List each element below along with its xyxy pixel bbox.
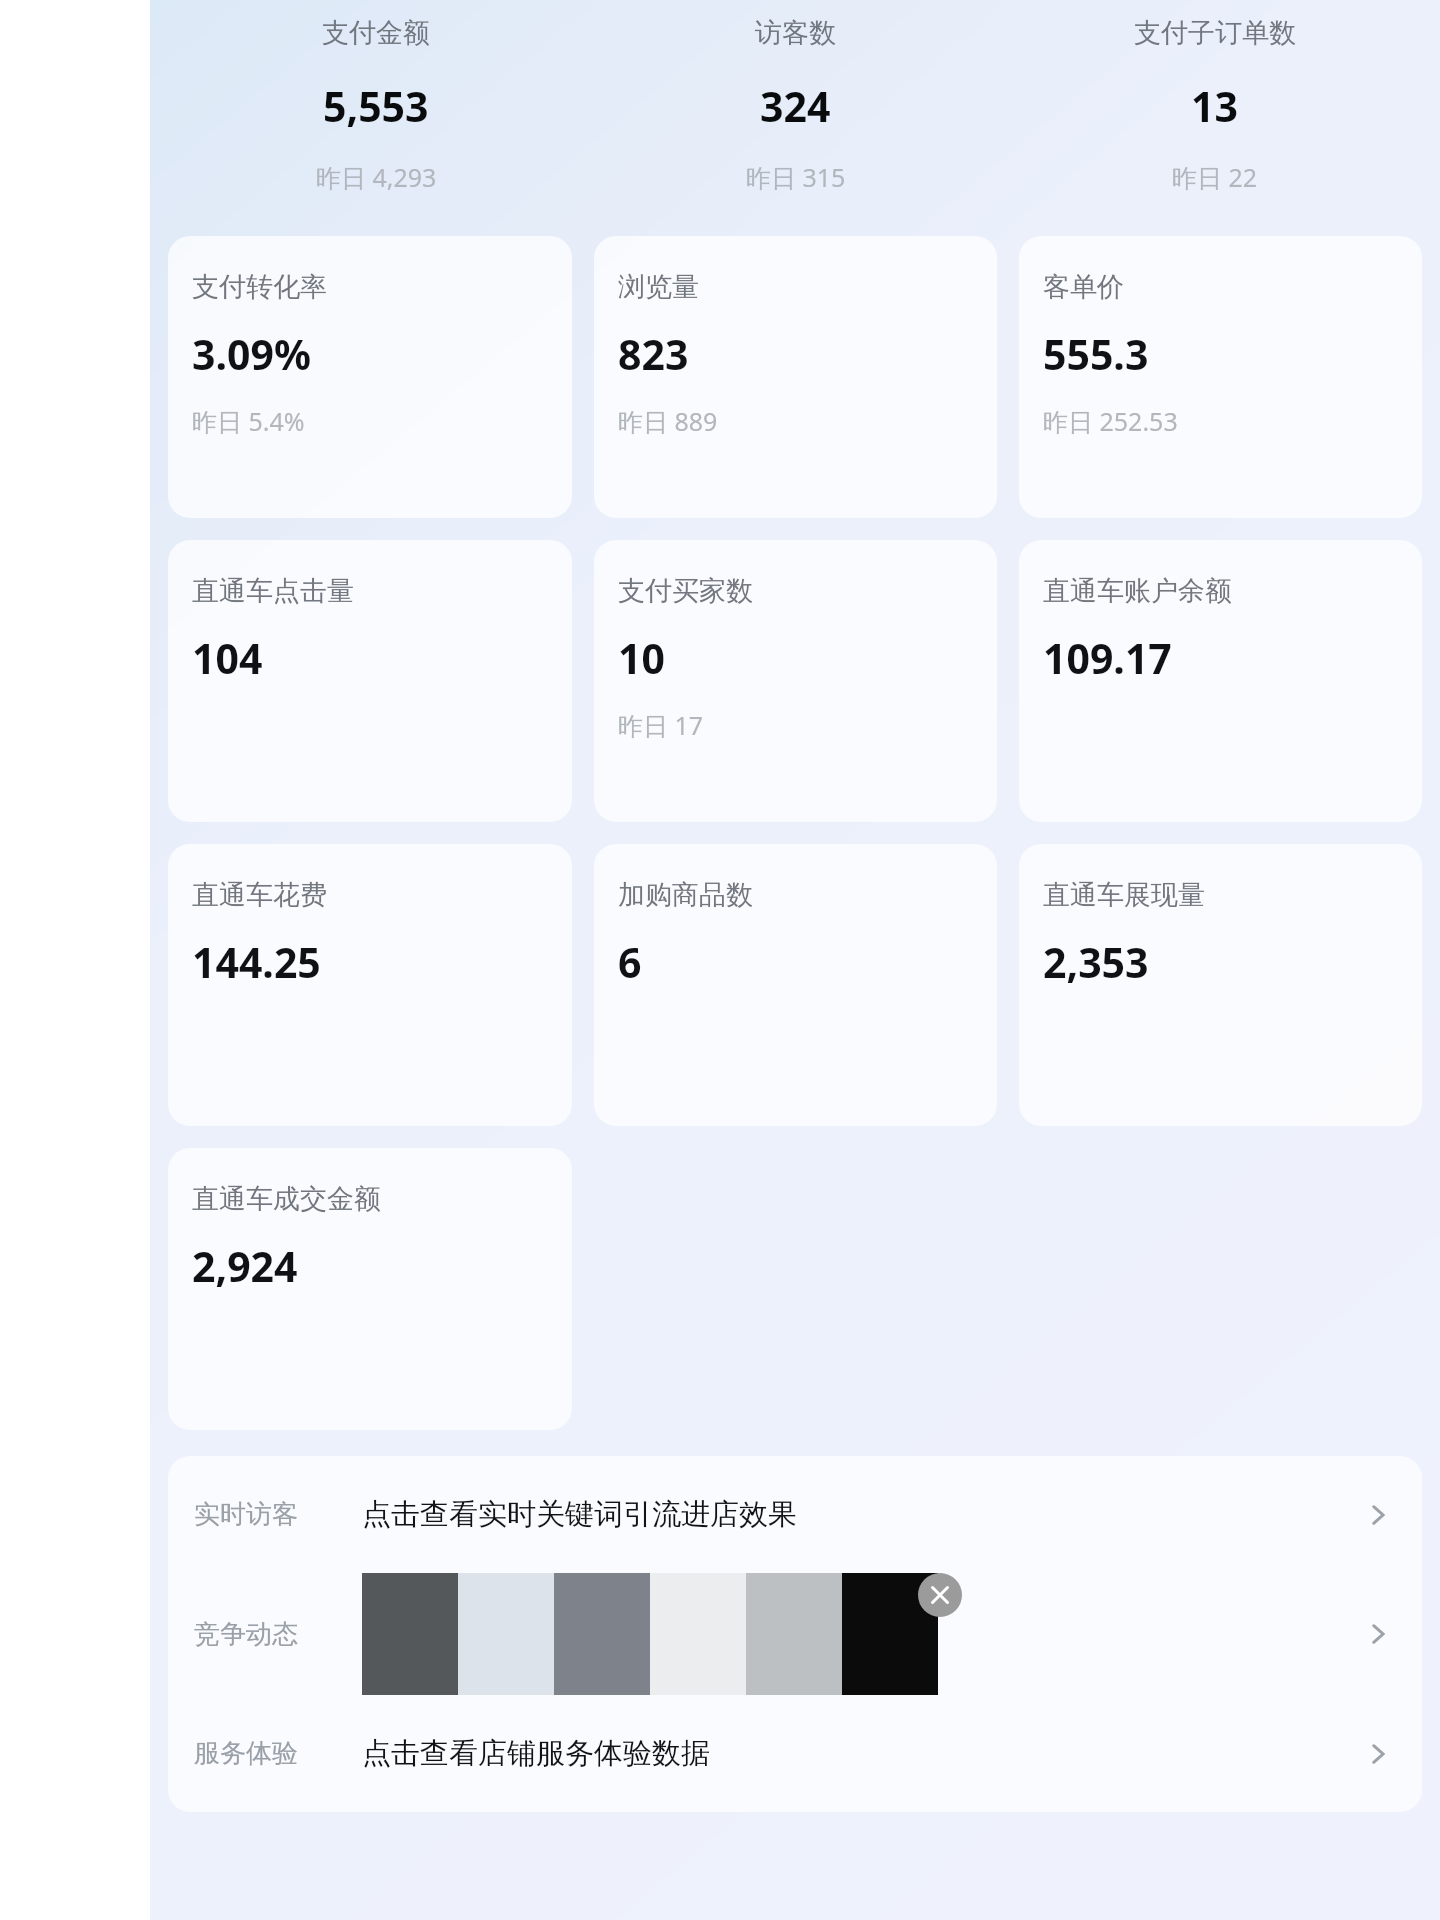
- staticText: 昨日 4,293: [316, 160, 437, 194]
- staticText: 昨日 17: [618, 708, 704, 742]
- staticText: 昨日 252.53: [1043, 404, 1178, 438]
- button[interactable]: 支付子订单数: [1005, 16, 1424, 194]
- staticText: 昨日 22: [1172, 160, 1258, 194]
- staticText: 昨日 889: [618, 404, 718, 438]
- button[interactable]: 直通车点击量: [168, 540, 572, 822]
- staticText: 2,353: [1043, 934, 1149, 990]
- staticText: 服务体验: [194, 1737, 344, 1770]
- staticText: 实时访客: [194, 1498, 344, 1531]
- button[interactable]: 服务体验: [168, 1721, 1422, 1786]
- staticText: 支付金额: [322, 16, 430, 50]
- other: 服务体验: [1360, 1736, 1396, 1772]
- button[interactable]: 直通车账户余额: [1019, 540, 1422, 822]
- staticText: 13: [1191, 78, 1238, 134]
- staticText: 144.25: [192, 934, 321, 990]
- button[interactable]: 直通车成交金额: [168, 1148, 572, 1430]
- staticText: 2,924: [192, 1238, 298, 1294]
- button[interactable]: 支付买家数: [594, 540, 997, 822]
- button[interactable]: 浏览量: [594, 236, 997, 518]
- button[interactable]: 支付金额: [166, 16, 586, 194]
- staticText: 6: [618, 934, 642, 990]
- staticText: 加购商品数: [618, 878, 753, 912]
- button[interactable]: 实时访客: [168, 1482, 1422, 1547]
- staticText: 访客数: [755, 16, 836, 50]
- other: 实时访客: [1360, 1497, 1396, 1533]
- staticText: 555.3: [1043, 326, 1149, 382]
- staticText: 支付转化率: [192, 270, 327, 304]
- staticText: 客单价: [1043, 270, 1124, 304]
- staticText: 324: [760, 78, 831, 134]
- button[interactable]: 支付转化率: [168, 236, 572, 518]
- button[interactable]: 客单价: [1019, 236, 1422, 518]
- staticText: 竞争动态: [194, 1618, 344, 1651]
- staticText: 支付子订单数: [1134, 16, 1296, 50]
- staticText: 直通车点击量: [192, 574, 354, 608]
- button[interactable]: 访客数: [586, 16, 1005, 194]
- staticText: 104: [192, 630, 263, 686]
- button[interactable]: 直通车展现量: [1019, 844, 1422, 1126]
- staticText: 823: [618, 326, 689, 382]
- button[interactable]: 直通车花费: [168, 844, 572, 1126]
- button[interactable]: 加购商品数: [594, 844, 997, 1126]
- staticText: 10: [618, 630, 665, 686]
- button[interactable]: Close: [918, 1573, 962, 1617]
- staticText: 5,553: [323, 78, 429, 134]
- staticText: 直通车账户余额: [1043, 574, 1232, 608]
- staticText: 3.09%: [192, 326, 311, 382]
- staticText: 浏览量: [618, 270, 699, 304]
- staticText: 直通车展现量: [1043, 878, 1205, 912]
- staticText: 昨日 5.4%: [192, 404, 305, 438]
- staticText: 支付买家数: [618, 574, 753, 608]
- staticText: 109.17: [1043, 630, 1172, 686]
- other: 竞争动态: [1360, 1616, 1396, 1652]
- staticText: 点击查看店铺服务体验数据: [362, 1735, 710, 1772]
- staticText: 点击查看实时关键词引流进店效果: [362, 1496, 797, 1533]
- staticText: 直通车成交金额: [192, 1182, 381, 1216]
- staticText: 直通车花费: [192, 878, 327, 912]
- button[interactable]: 竞争动态: [168, 1559, 1422, 1709]
- staticText: 昨日 315: [746, 160, 846, 194]
